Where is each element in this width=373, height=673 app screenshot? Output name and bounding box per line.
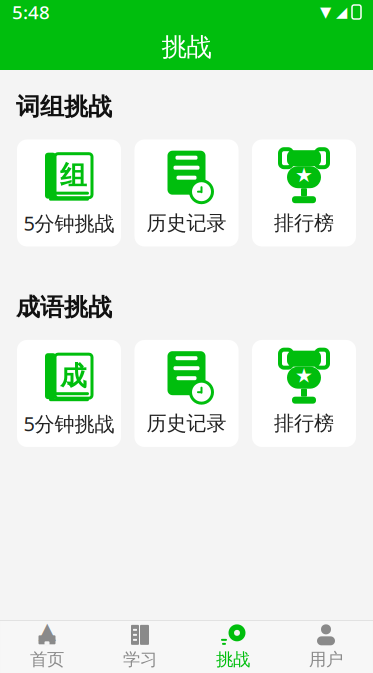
button[interactable]: 成 (17, 340, 121, 447)
staticText: 用户 (309, 649, 343, 670)
staticText: 5分钟挑战 (23, 210, 114, 236)
button[interactable]: 组 (17, 139, 121, 246)
staticText: 首页 (30, 649, 64, 670)
staticText: ★ (295, 364, 313, 387)
button[interactable]: ▲ (0, 622, 93, 672)
button[interactable]: ★ (252, 139, 356, 246)
staticText: 排行榜 (274, 211, 334, 235)
button[interactable]: ★ (252, 340, 356, 447)
staticText: ★ (295, 164, 313, 186)
staticText: 历史记录 (146, 211, 226, 235)
staticText: 挑战 (216, 649, 250, 670)
staticText: ◢ (336, 4, 347, 20)
staticText: 组 (60, 159, 87, 192)
staticText: 排行榜 (274, 411, 334, 436)
button[interactable]: 历史记录 (134, 139, 238, 246)
staticText: 5分钟挑战 (23, 410, 114, 437)
staticText: 成语挑战 (16, 292, 112, 322)
staticText: 学习 (123, 649, 157, 670)
button[interactable]: 用户 (279, 622, 372, 672)
button[interactable]: 历史记录 (134, 340, 238, 447)
staticText: ▲ (38, 617, 55, 643)
staticText: 成 (60, 360, 87, 393)
staticText: 词组挑战 (16, 92, 112, 121)
button[interactable]: 学习 (93, 622, 186, 672)
staticText: ▼ (320, 4, 331, 20)
staticText: 挑战 (161, 31, 211, 62)
staticText: 历史记录 (146, 411, 226, 436)
button[interactable]: 挑战 (186, 622, 279, 672)
staticText: 5:48 (12, 0, 50, 24)
